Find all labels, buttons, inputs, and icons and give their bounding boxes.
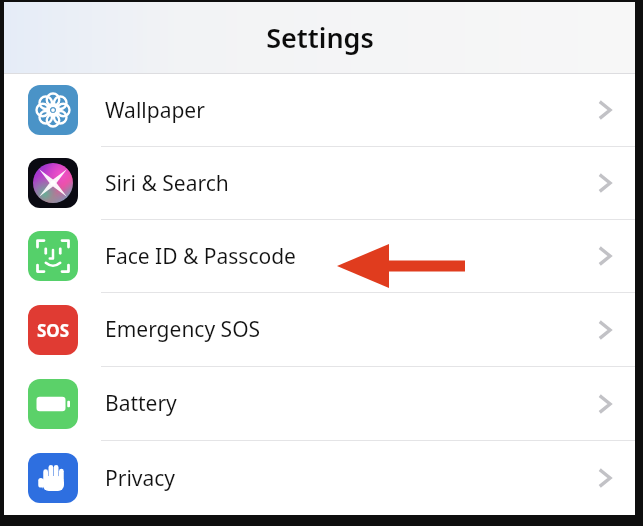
staticText: Wallpaper <box>105 96 591 125</box>
button[interactable]: Battery <box>4 367 635 440</box>
button[interactable]: Wallpaper <box>4 74 635 146</box>
staticText: SOS <box>37 319 70 342</box>
button[interactable]: Face ID & Passcode <box>4 220 635 292</box>
button[interactable]: SOS <box>4 293 635 366</box>
staticText: Face ID & Passcode <box>105 242 591 271</box>
staticText: Settings <box>266 19 374 56</box>
staticText: Privacy <box>105 464 591 493</box>
staticText: Siri & Search <box>105 169 591 198</box>
button[interactable]: Siri & Search <box>4 147 635 219</box>
staticText: Battery <box>105 389 591 418</box>
staticText: Emergency SOS <box>105 315 591 344</box>
button[interactable]: Privacy <box>4 441 635 515</box>
